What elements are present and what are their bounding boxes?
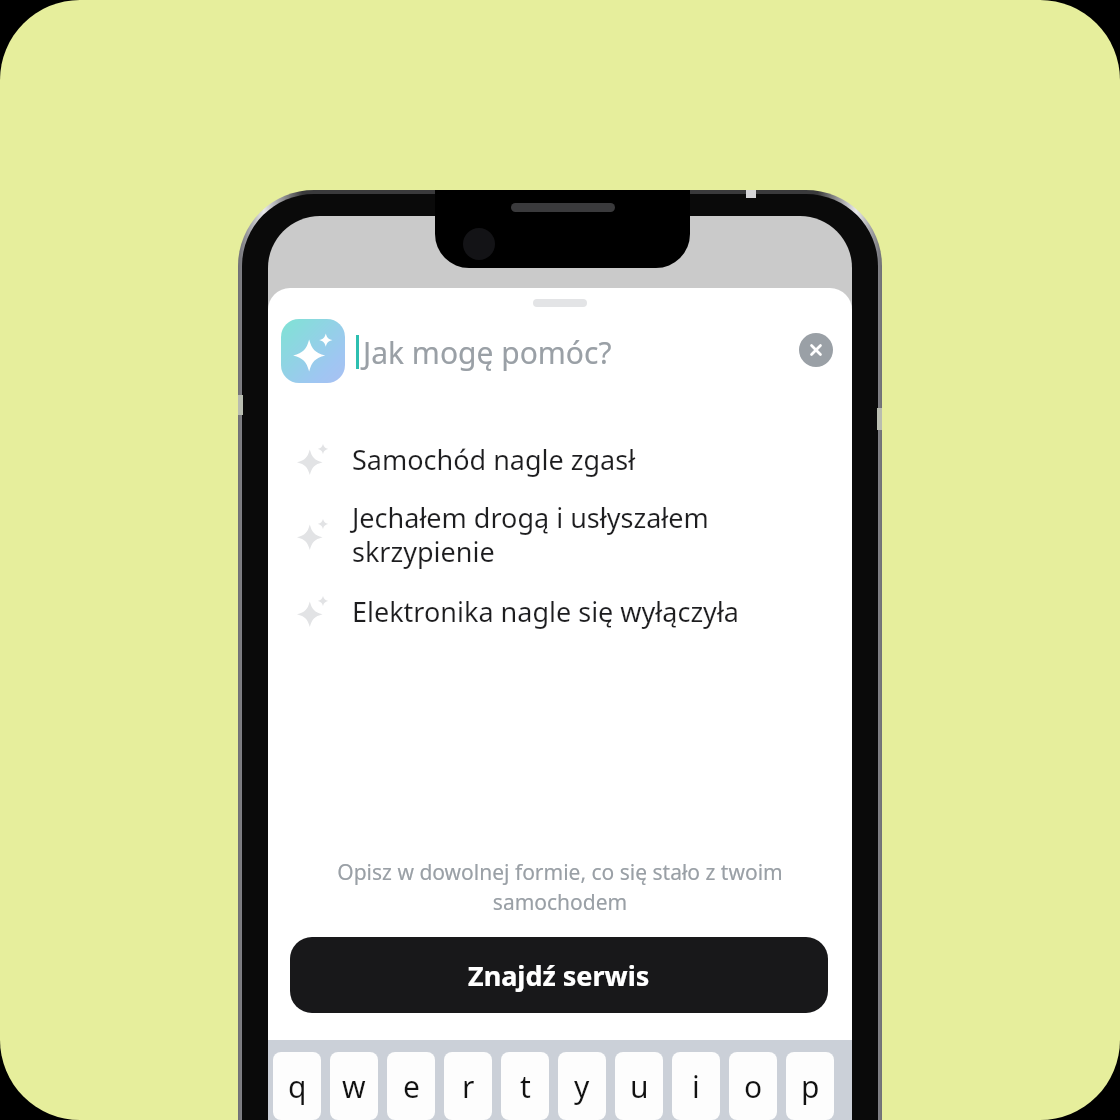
- staticText: i: [692, 1066, 700, 1107]
- staticText: e: [403, 1066, 420, 1107]
- staticText: r: [462, 1066, 475, 1107]
- button[interactable]: r: [444, 1052, 492, 1120]
- button[interactable]: Samochód nagle zgasł: [268, 435, 852, 483]
- button[interactable]: o: [729, 1052, 777, 1120]
- button[interactable]: Jak mogę pomóc?: [356, 331, 776, 373]
- button[interactable]: AI assistant: [281, 319, 345, 383]
- staticText: Znajdź serwis: [468, 957, 650, 994]
- staticText: Opisz w dowolnej formie, co się stało z …: [300, 858, 820, 916]
- button[interactable]: Elektronika nagle się wyłączyła: [268, 587, 852, 635]
- staticText: q: [288, 1066, 307, 1107]
- button[interactable]: t: [501, 1052, 549, 1120]
- button[interactable]: q: [273, 1052, 321, 1120]
- button[interactable]: e: [387, 1052, 435, 1120]
- button[interactable]: i: [672, 1052, 720, 1120]
- button[interactable]: Znajdź serwis: [290, 937, 828, 1013]
- button[interactable]: w: [330, 1052, 378, 1120]
- button[interactable]: p: [786, 1052, 834, 1120]
- button[interactable]: u: [615, 1052, 663, 1120]
- staticText: y: [574, 1066, 590, 1107]
- staticText: Jechałem drogą i usłyszałem skrzypienie: [352, 499, 709, 570]
- staticText: Samochód nagle zgasł: [352, 441, 636, 478]
- staticText: Elektronika nagle się wyłączyła: [352, 593, 739, 630]
- staticText: w: [342, 1066, 366, 1107]
- staticText: p: [801, 1066, 820, 1107]
- staticText: o: [744, 1066, 763, 1107]
- staticText: u: [630, 1066, 649, 1107]
- button[interactable]: Close: [799, 333, 833, 367]
- staticText: Jak mogę pomóc?: [363, 332, 612, 373]
- button[interactable]: Jechałem drogą i usłyszałem skrzypienie: [268, 493, 852, 572]
- staticText: t: [520, 1066, 531, 1107]
- button[interactable]: y: [558, 1052, 606, 1120]
